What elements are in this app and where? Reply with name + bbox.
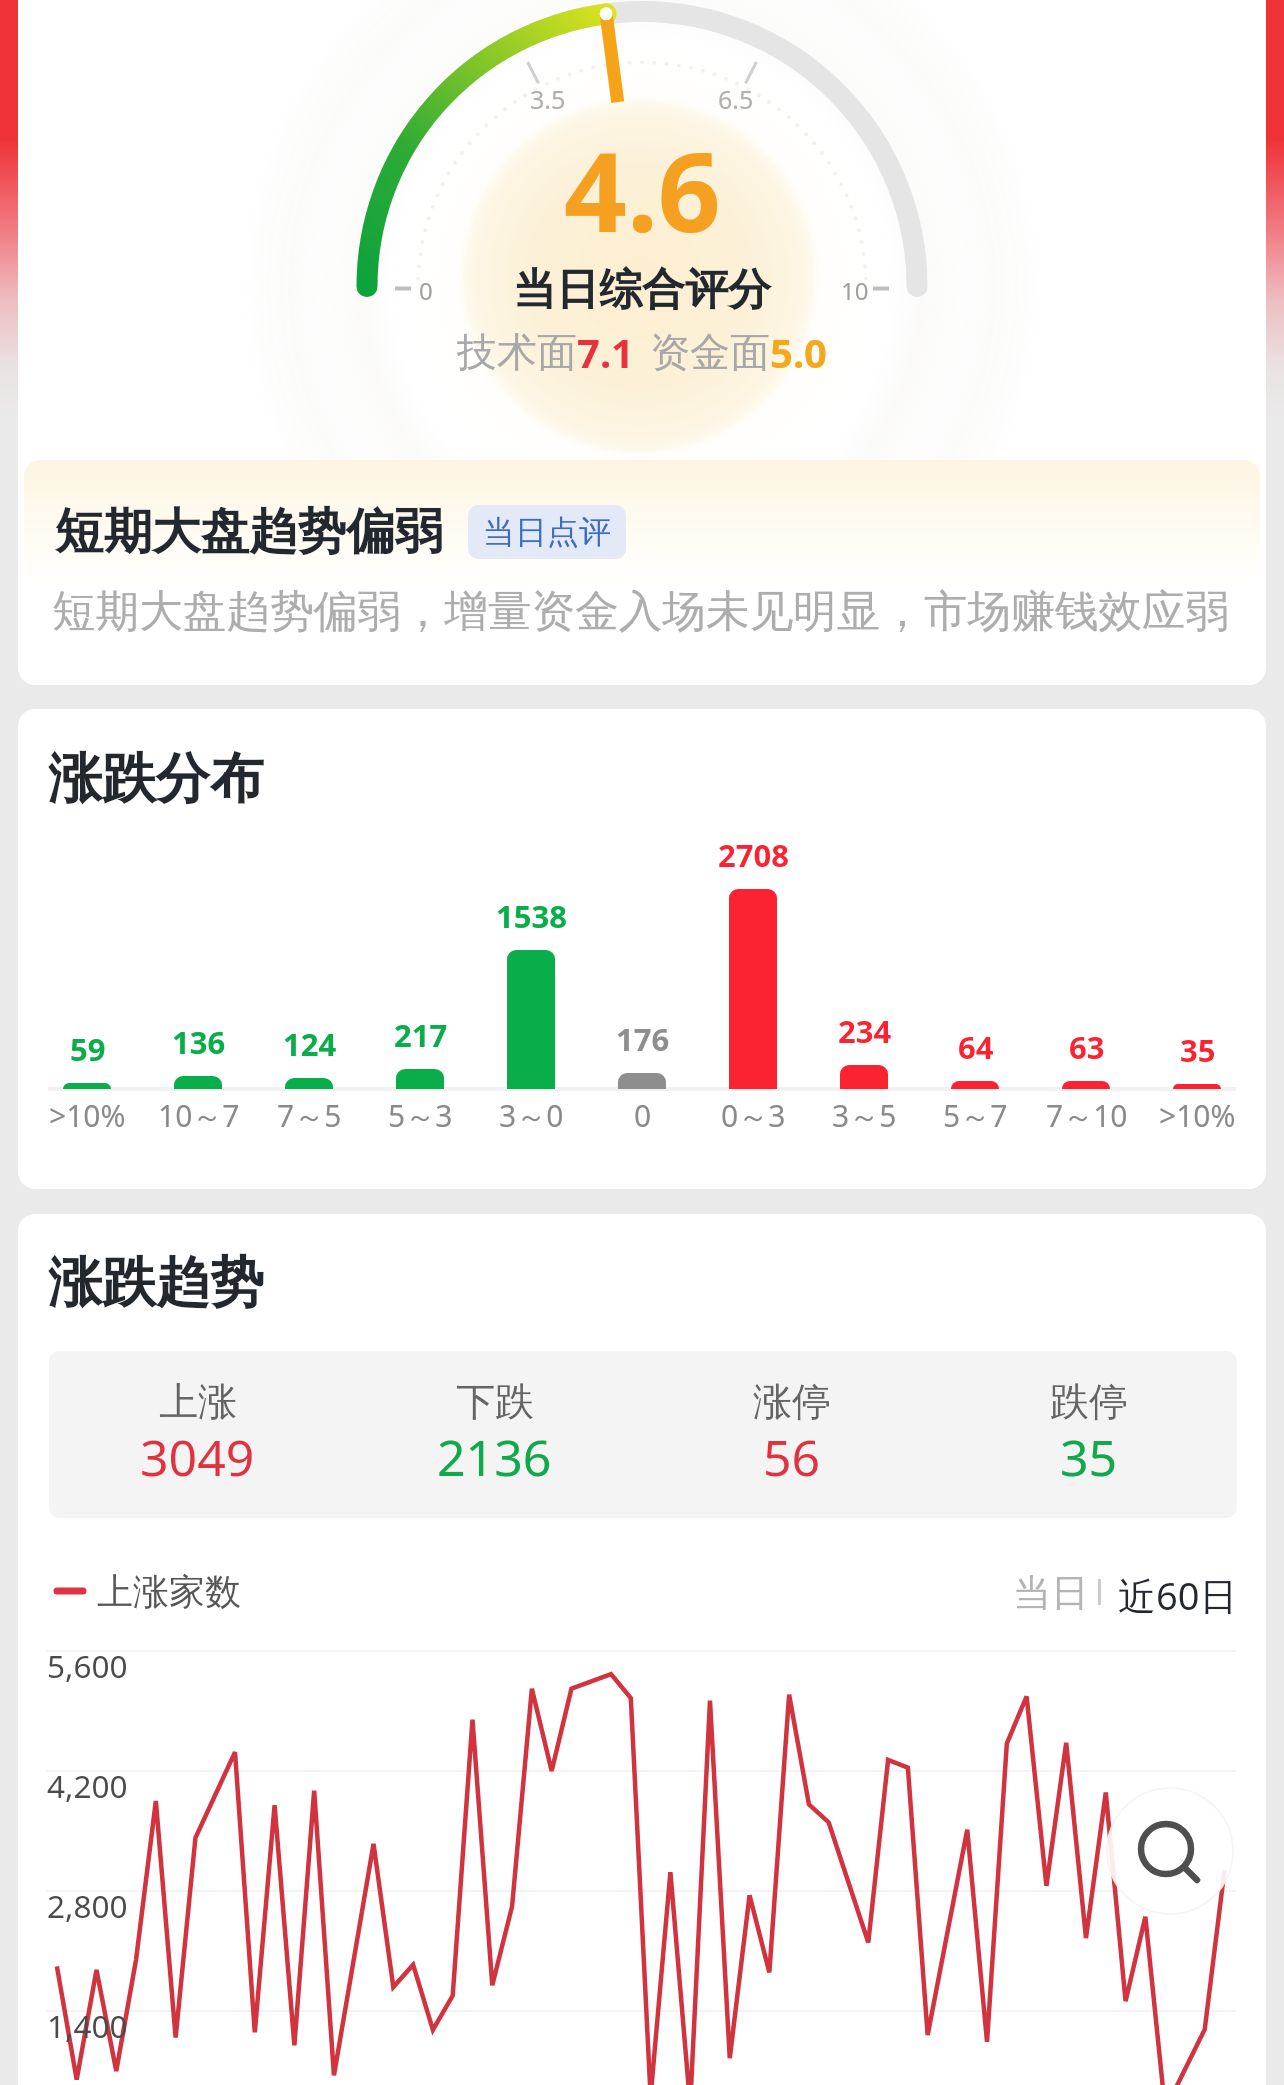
staticText: 资金面 xyxy=(650,327,770,377)
button[interactable]: 近60日 xyxy=(1110,1561,1246,1629)
staticText: 涨跌分布 xyxy=(48,745,264,813)
staticText: 176 xyxy=(616,1018,670,1060)
staticText: 3.5 xyxy=(530,82,566,116)
staticText: 3049 xyxy=(140,1423,255,1491)
staticText: 4,200 xyxy=(47,1764,128,1807)
staticText: 技术面 xyxy=(457,327,577,377)
staticText: 近60日 xyxy=(1118,1569,1238,1621)
staticText: 63 xyxy=(1069,1026,1105,1068)
staticText: 7～10 xyxy=(1046,1095,1128,1136)
staticText: 5.0 xyxy=(770,325,827,379)
button[interactable]: 短期大盘趋势偏弱 xyxy=(24,460,1260,685)
staticText: 6.5 xyxy=(718,82,754,116)
staticText: 上涨 xyxy=(159,1377,237,1426)
staticText: 7～5 xyxy=(277,1095,342,1136)
staticText: 短期大盘趋势偏弱 xyxy=(55,501,443,562)
button[interactable]: 涨跌分布 xyxy=(18,709,1266,1189)
staticText: 跌停 xyxy=(1050,1377,1128,1426)
staticText: 10 xyxy=(841,274,869,307)
staticText: 短期大盘趋势偏弱，增量资金入场未见明显，市场赚钱效应弱 xyxy=(52,584,1230,639)
staticText: 上涨家数 xyxy=(97,1569,241,1614)
staticText: 64 xyxy=(958,1026,994,1068)
staticText: 0～3 xyxy=(721,1095,786,1136)
staticText: 7.1 xyxy=(577,325,634,379)
staticText: 217 xyxy=(394,1014,448,1056)
staticText: 0 xyxy=(634,1095,652,1136)
staticText: 当日 xyxy=(1013,1569,1089,1617)
staticText: >10% xyxy=(49,1095,126,1136)
staticText: 59 xyxy=(70,1028,106,1070)
staticText: 3～0 xyxy=(499,1095,564,1136)
staticText: 2708 xyxy=(718,834,789,876)
staticText: 2136 xyxy=(437,1423,552,1491)
staticText: 5～3 xyxy=(388,1095,453,1136)
staticText: 下跌 xyxy=(456,1377,534,1426)
staticText: 当日点评 xyxy=(483,512,611,552)
staticText: 1,400 xyxy=(47,2004,128,2047)
staticText: 35 xyxy=(1060,1423,1118,1491)
staticText: 124 xyxy=(283,1023,337,1065)
staticText: 5～7 xyxy=(943,1095,1008,1136)
staticText: 5,600 xyxy=(47,1644,128,1687)
staticText: 2,800 xyxy=(47,1884,128,1927)
staticText: 1538 xyxy=(496,895,567,937)
staticText: 4.6 xyxy=(564,114,721,264)
staticText: 涨停 xyxy=(753,1377,831,1426)
staticText: 136 xyxy=(172,1021,226,1063)
staticText: >10% xyxy=(1159,1095,1236,1136)
staticText: 0 xyxy=(419,274,433,307)
button[interactable]: Search xyxy=(1106,1787,1234,1915)
staticText: 10～7 xyxy=(158,1095,240,1136)
staticText: 35 xyxy=(1180,1029,1216,1071)
staticText: 56 xyxy=(763,1423,821,1491)
staticText: 234 xyxy=(838,1010,892,1052)
staticText: 当日综合评分 xyxy=(513,263,771,317)
button[interactable]: 当日 xyxy=(1005,1561,1097,1625)
staticText: 涨跌趋势 xyxy=(48,1249,264,1317)
staticText: 3～5 xyxy=(832,1095,897,1136)
